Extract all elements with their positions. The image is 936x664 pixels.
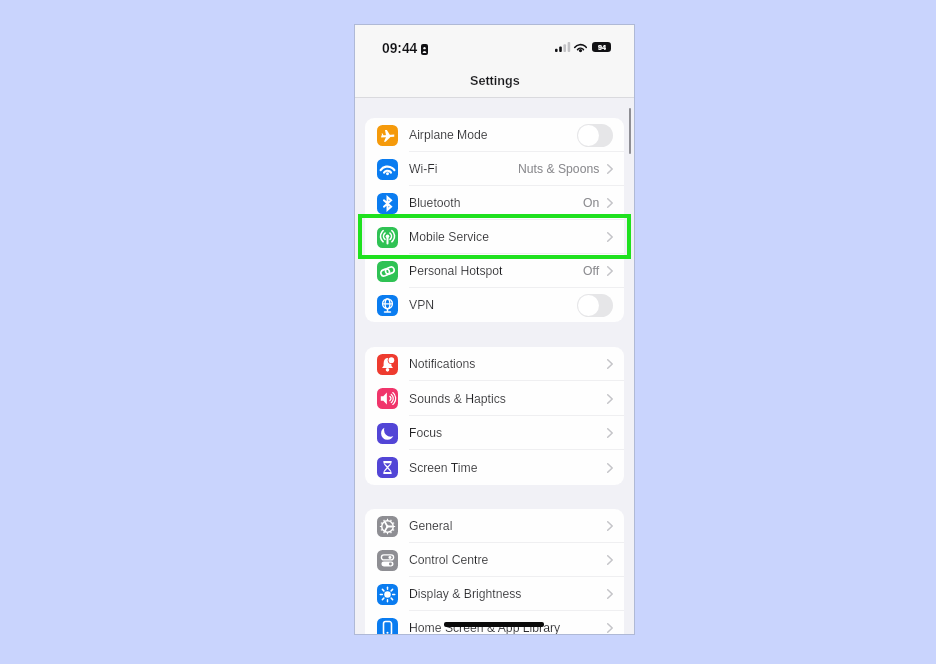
button[interactable]: Sounds & Haptics [365, 381, 624, 416]
staticText: Home Screen & App Library [409, 621, 561, 634]
staticText: Settings [470, 74, 520, 88]
button[interactable]: Personal Hotspot [365, 254, 624, 288]
staticText: Mobile Service [409, 230, 489, 244]
button[interactable]: Bluetooth [365, 186, 624, 220]
staticText: On [583, 196, 600, 210]
staticText: Focus [409, 426, 443, 440]
staticText: Sounds & Haptics [409, 392, 506, 406]
button[interactable]: Notifications [365, 347, 624, 381]
staticText: 94 [598, 43, 606, 51]
staticText: General [409, 519, 453, 533]
staticText: 09:44 [382, 41, 418, 56]
button[interactable]: Focus [365, 416, 624, 450]
button[interactable]: Display & Brightness [365, 577, 624, 611]
staticText: Personal Hotspot [409, 264, 503, 278]
staticText: VPN [409, 298, 435, 312]
button[interactable]: General [365, 509, 624, 543]
staticText: Wi-Fi [409, 162, 438, 176]
staticText: Off [583, 264, 600, 278]
button[interactable]: Screen Time [365, 450, 624, 485]
button[interactable]: Home Screen & App Library [365, 611, 624, 634]
button[interactable]: Control Centre [365, 543, 624, 577]
staticText: Nuts & Spoons [518, 162, 600, 176]
staticText: Display & Brightness [409, 587, 522, 601]
staticText: Notifications [409, 357, 476, 371]
staticText: Control Centre [409, 553, 489, 567]
button[interactable]: Wi-Fi [365, 152, 624, 186]
staticText: Screen Time [409, 461, 478, 475]
staticText: Bluetooth [409, 196, 461, 210]
button[interactable]: Airplane Mode [365, 118, 624, 152]
button[interactable]: Mobile Service [365, 220, 624, 254]
button[interactable]: Toggle Airplane Mode [577, 124, 613, 147]
staticText: Airplane Mode [409, 128, 488, 142]
button[interactable]: Toggle VPN [577, 294, 613, 317]
button[interactable]: VPN [365, 288, 624, 322]
